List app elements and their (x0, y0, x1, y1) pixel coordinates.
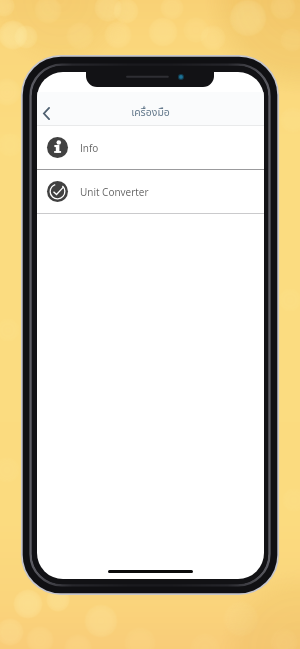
button[interactable]: Info (37, 126, 264, 169)
staticText: Unit Converter (80, 185, 149, 199)
button[interactable]: Back (37, 100, 59, 126)
staticText: Info (80, 141, 99, 155)
staticText: เครื่องมือ (131, 105, 170, 119)
button[interactable]: Unit Converter (37, 170, 264, 213)
